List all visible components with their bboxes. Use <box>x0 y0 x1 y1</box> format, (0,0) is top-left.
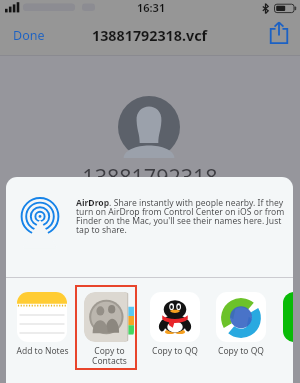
button[interactable]: AirDrop. Share instantly with people nea… <box>6 177 293 277</box>
staticText: Copy to Contacts <box>92 345 127 366</box>
staticText: 13881792318 <box>0 162 300 191</box>
staticText: 13881792318.vcf <box>92 26 208 45</box>
button[interactable]: Copy to QQ <box>144 278 206 383</box>
staticText: Done <box>13 27 45 44</box>
staticText: Add to Notes <box>16 345 69 357</box>
button[interactable]: Done <box>7 21 51 50</box>
staticText: Copy to QQ <box>152 345 198 357</box>
button[interactable]: Copy to QQ <box>210 278 272 383</box>
button[interactable] <box>277 278 293 383</box>
button[interactable]: Add to Notes <box>11 278 73 383</box>
button[interactable]: Copy to Contacts <box>78 278 140 383</box>
staticText: AirDrop. Share instantly with people nea… <box>76 197 290 236</box>
staticText: Copy to QQ <box>218 345 264 357</box>
button[interactable]: Share <box>267 21 291 45</box>
staticText: 16:31 <box>137 0 166 15</box>
